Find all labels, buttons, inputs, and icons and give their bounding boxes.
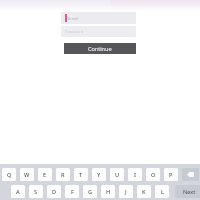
staticText: Y [97, 171, 101, 179]
staticText: U [115, 171, 120, 179]
button[interactable]: U [110, 168, 124, 181]
button[interactable]: W [20, 168, 34, 181]
staticText: Continue [88, 45, 112, 52]
staticText: Q [7, 171, 12, 179]
button[interactable]: I [128, 168, 142, 181]
button[interactable]: O [146, 168, 160, 181]
staticText: D [52, 188, 57, 196]
button[interactable]: Continue [64, 43, 136, 54]
staticText: P [169, 171, 173, 179]
button[interactable]: D [47, 185, 61, 198]
button[interactable]: Q [2, 168, 16, 181]
button[interactable]: H [101, 185, 115, 198]
button[interactable]: R [56, 168, 70, 181]
button[interactable]: S [29, 185, 43, 198]
button[interactable]: K [137, 185, 151, 198]
button[interactable]: L [155, 185, 169, 198]
staticText: J [125, 188, 127, 196]
button[interactable]: Next [175, 185, 200, 198]
button[interactable]: T [74, 168, 88, 181]
staticText: T [79, 171, 83, 179]
staticText: I [134, 171, 136, 179]
staticText: L [161, 188, 164, 196]
staticText: Password [65, 29, 84, 34]
staticText: A [16, 188, 20, 196]
button[interactable]: A [11, 185, 25, 198]
button[interactable]: J [119, 185, 133, 198]
staticText: R [61, 171, 65, 179]
staticText: W [24, 171, 30, 179]
button[interactable]: E [38, 168, 52, 181]
staticText: K [142, 188, 146, 196]
button[interactable]: P [164, 168, 178, 181]
staticText: Next [183, 188, 196, 196]
staticText: Email [68, 16, 79, 21]
staticText: S [34, 188, 38, 196]
button[interactable]: Y [92, 168, 106, 181]
button[interactable]: Email [61, 12, 136, 24]
staticText: F [71, 188, 74, 196]
staticText: G [88, 188, 93, 196]
button[interactable]: F [65, 185, 79, 198]
staticText: H [106, 188, 111, 196]
staticText: E [43, 171, 47, 179]
staticText: O [151, 171, 156, 179]
button[interactable]: G [83, 185, 97, 198]
button[interactable]: Backspace [182, 168, 199, 181]
